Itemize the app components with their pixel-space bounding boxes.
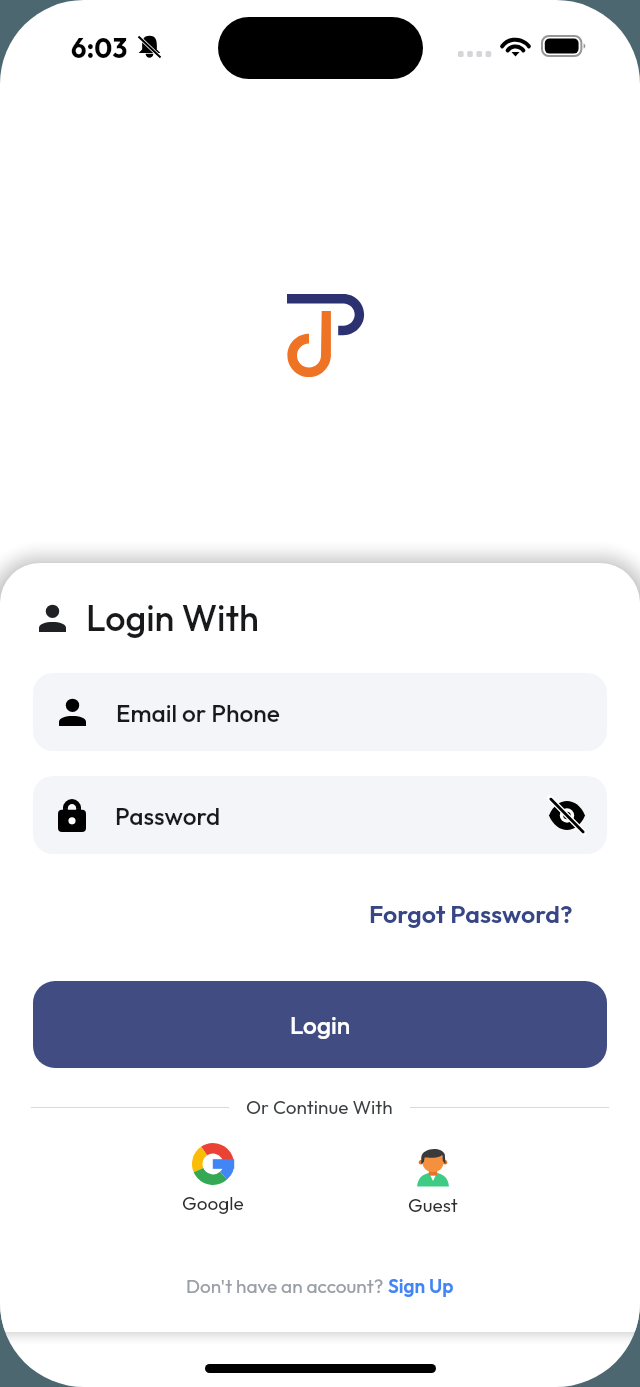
staticText: Don't have an account?	[186, 1274, 388, 1298]
button[interactable]: Guest	[373, 1145, 493, 1217]
button[interactable]: Forgot Password?	[352, 889, 592, 935]
button[interactable]: Password	[33, 776, 607, 854]
button[interactable]: Email or Phone	[33, 673, 607, 751]
button[interactable]: Login	[33, 981, 607, 1068]
staticText: Forgot Password?	[369, 898, 573, 930]
button[interactable]: Login With	[38, 583, 288, 641]
button[interactable]: Sign Up	[388, 1274, 454, 1298]
staticText: Google	[182, 1191, 244, 1215]
staticText: Login	[290, 1009, 351, 1040]
button[interactable]: Toggle password visibility	[545, 793, 589, 837]
staticText: 6:03	[71, 31, 128, 65]
staticText: Login With	[86, 595, 259, 640]
staticText: Password	[115, 800, 221, 831]
staticText: Email or Phone	[116, 697, 280, 728]
staticText: Guest	[408, 1193, 458, 1217]
staticText: Or Continue With	[246, 1095, 393, 1119]
button[interactable]: Google	[153, 1143, 273, 1215]
